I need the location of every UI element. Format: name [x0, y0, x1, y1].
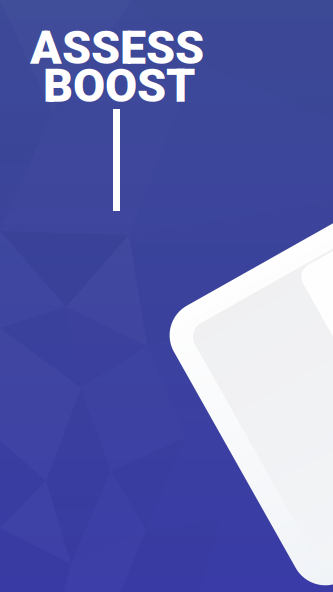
staticText: ASSESS	[30, 20, 204, 75]
staticText: BOOST	[43, 58, 195, 113]
